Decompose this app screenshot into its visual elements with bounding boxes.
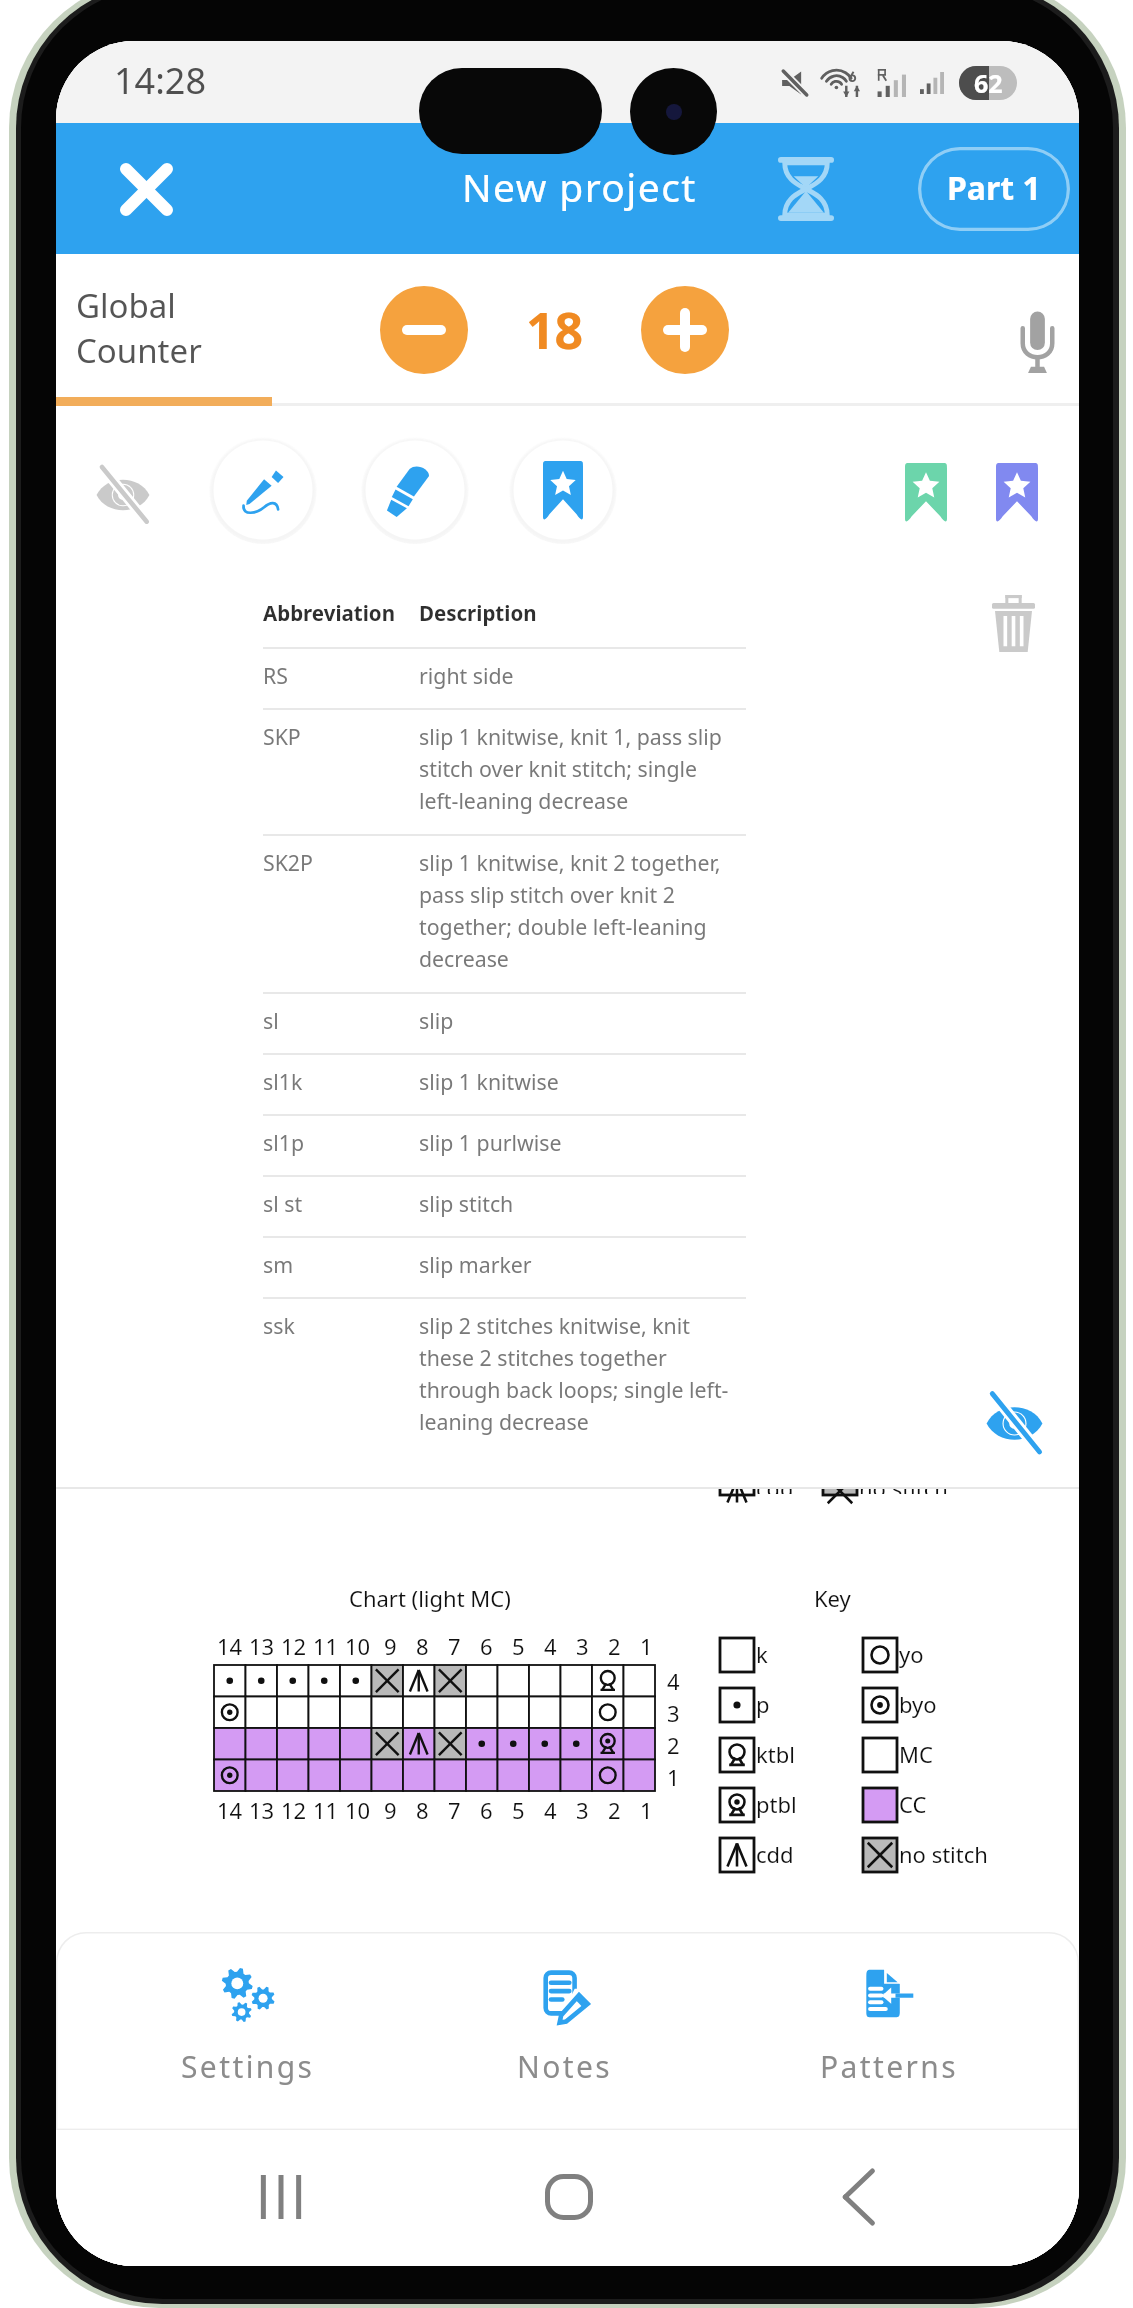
staticText: 6 <box>480 1631 493 1661</box>
staticText: p <box>756 1689 770 1719</box>
staticText: slip stitch <box>419 1189 741 1218</box>
staticText: RS <box>263 661 419 690</box>
staticText: SK2P <box>263 848 419 877</box>
staticText: Patterns <box>820 2046 959 2087</box>
button[interactable]: Back <box>816 2155 900 2239</box>
staticText: Chart (light MC) <box>349 1583 511 1613</box>
staticText: 12 <box>281 1795 307 1825</box>
staticText: 1 <box>640 1631 653 1661</box>
staticText: byo <box>899 1689 937 1719</box>
staticText: 62 <box>974 66 1003 100</box>
button[interactable]: Voice input <box>995 300 1079 384</box>
staticText: slip 2 stitches knitwise, knit these 2 s… <box>419 1311 741 1436</box>
staticText: 7 <box>448 1631 461 1661</box>
staticText: 4 <box>667 1666 680 1696</box>
staticText: Global <box>76 283 176 328</box>
button[interactable]: Bookmark <box>509 436 617 544</box>
staticText: 11 <box>313 1795 339 1825</box>
staticText: Notes <box>517 2046 613 2087</box>
staticText: Key <box>814 1583 851 1613</box>
staticText: sl st <box>263 1189 419 1218</box>
staticText: 13 <box>249 1795 275 1825</box>
button[interactable]: Delete <box>973 583 1053 663</box>
staticText: slip 1 knitwise <box>419 1067 741 1096</box>
staticText: ktbl <box>756 1739 795 1769</box>
staticText: Counter <box>76 328 202 373</box>
staticText: 11 <box>313 1631 339 1661</box>
button[interactable]: Increment counter <box>641 286 729 374</box>
staticText: cdd <box>756 1489 794 1494</box>
staticText: SKP <box>263 722 419 751</box>
button[interactable]: Purple bookmark <box>974 449 1060 535</box>
staticText: 3 <box>576 1795 589 1825</box>
staticText: slip 1 knitwise, knit 1, pass slip stitc… <box>419 722 741 815</box>
staticText: CC <box>899 1789 927 1819</box>
staticText: 14 <box>217 1795 243 1825</box>
staticText: 3 <box>667 1698 680 1728</box>
staticText: ptbl <box>756 1789 797 1819</box>
staticText: 10 <box>345 1795 371 1825</box>
staticText: 14:28 <box>114 56 207 105</box>
staticText: 13 <box>249 1631 275 1661</box>
button[interactable]: Pen <box>209 436 317 544</box>
staticText: 9 <box>384 1631 397 1661</box>
staticText: 4 <box>544 1631 557 1661</box>
staticText: 9 <box>384 1795 397 1825</box>
button[interactable]: Hide <box>83 455 163 535</box>
staticText: 2 <box>608 1631 621 1661</box>
staticText: 2 <box>608 1795 621 1825</box>
staticText: cdd <box>756 1839 794 1869</box>
staticText: slip marker <box>419 1250 741 1279</box>
staticText: k <box>756 1639 768 1669</box>
staticText: 5 <box>512 1631 525 1661</box>
button[interactable]: Part 1 <box>918 147 1070 231</box>
staticText: ssk <box>263 1311 419 1340</box>
staticText: Settings <box>181 2046 315 2087</box>
staticText: sl1p <box>263 1128 419 1157</box>
staticText: New project <box>462 160 697 213</box>
staticText: 4 <box>544 1795 557 1825</box>
staticText: 18 <box>526 296 584 364</box>
staticText: 1 <box>667 1762 680 1792</box>
staticText: Part 1 <box>947 166 1041 210</box>
staticText: Abbreviation <box>263 599 419 627</box>
staticText: 6 <box>480 1795 493 1825</box>
button[interactable]: Hide pattern <box>974 1383 1054 1463</box>
staticText: 5 <box>512 1795 525 1825</box>
staticText: slip 1 purlwise <box>419 1128 741 1157</box>
button[interactable]: Timer <box>759 142 853 236</box>
staticText: 8 <box>416 1631 429 1661</box>
staticText: 1 <box>640 1795 653 1825</box>
button[interactable]: Home <box>527 2155 611 2239</box>
staticText: 14 <box>217 1631 243 1661</box>
button[interactable]: Highlighter <box>361 436 469 544</box>
staticText: no stitch <box>859 1489 948 1494</box>
staticText: 7 <box>448 1795 461 1825</box>
button[interactable]: Close <box>98 141 194 237</box>
staticText: sm <box>263 1250 419 1279</box>
button[interactable]: Recent apps <box>239 2155 323 2239</box>
staticText: yo <box>899 1639 924 1669</box>
staticText: no stitch <box>899 1839 988 1869</box>
button[interactable]: Patterns <box>749 1940 1029 2122</box>
button[interactable]: Notes <box>425 1940 705 2122</box>
staticText: sl <box>263 1006 419 1035</box>
staticText: 3 <box>576 1631 589 1661</box>
staticText: Description <box>419 599 537 627</box>
staticText: 12 <box>281 1631 307 1661</box>
staticText: right side <box>419 661 741 690</box>
staticText: sl1k <box>263 1067 419 1096</box>
button[interactable]: Settings <box>108 1940 388 2122</box>
staticText: 2 <box>667 1730 680 1760</box>
staticText: slip <box>419 1006 741 1035</box>
button[interactable]: Green bookmark <box>883 449 969 535</box>
staticText: slip 1 knitwise, knit 2 together, pass s… <box>419 848 741 973</box>
staticText: MC <box>899 1739 933 1769</box>
staticText: 10 <box>345 1631 371 1661</box>
staticText: 8 <box>416 1795 429 1825</box>
button[interactable]: Decrement counter <box>380 286 468 374</box>
